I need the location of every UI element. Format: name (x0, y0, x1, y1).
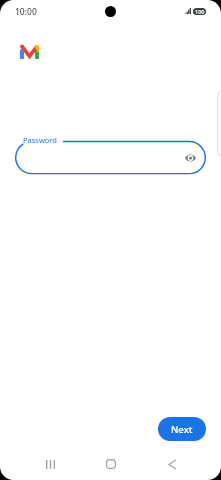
staticText: 10:00 (15, 6, 37, 18)
button[interactable]: Home (92, 450, 130, 478)
staticText: 100 (195, 8, 205, 15)
button[interactable]: Password (15, 133, 206, 177)
button[interactable]: Show password (179, 146, 201, 168)
button[interactable]: Next (158, 417, 206, 441)
button[interactable]: Recent apps (31, 450, 69, 478)
staticText: Password (23, 135, 57, 145)
button[interactable]: Back (153, 450, 191, 478)
staticText: Next (171, 423, 193, 436)
